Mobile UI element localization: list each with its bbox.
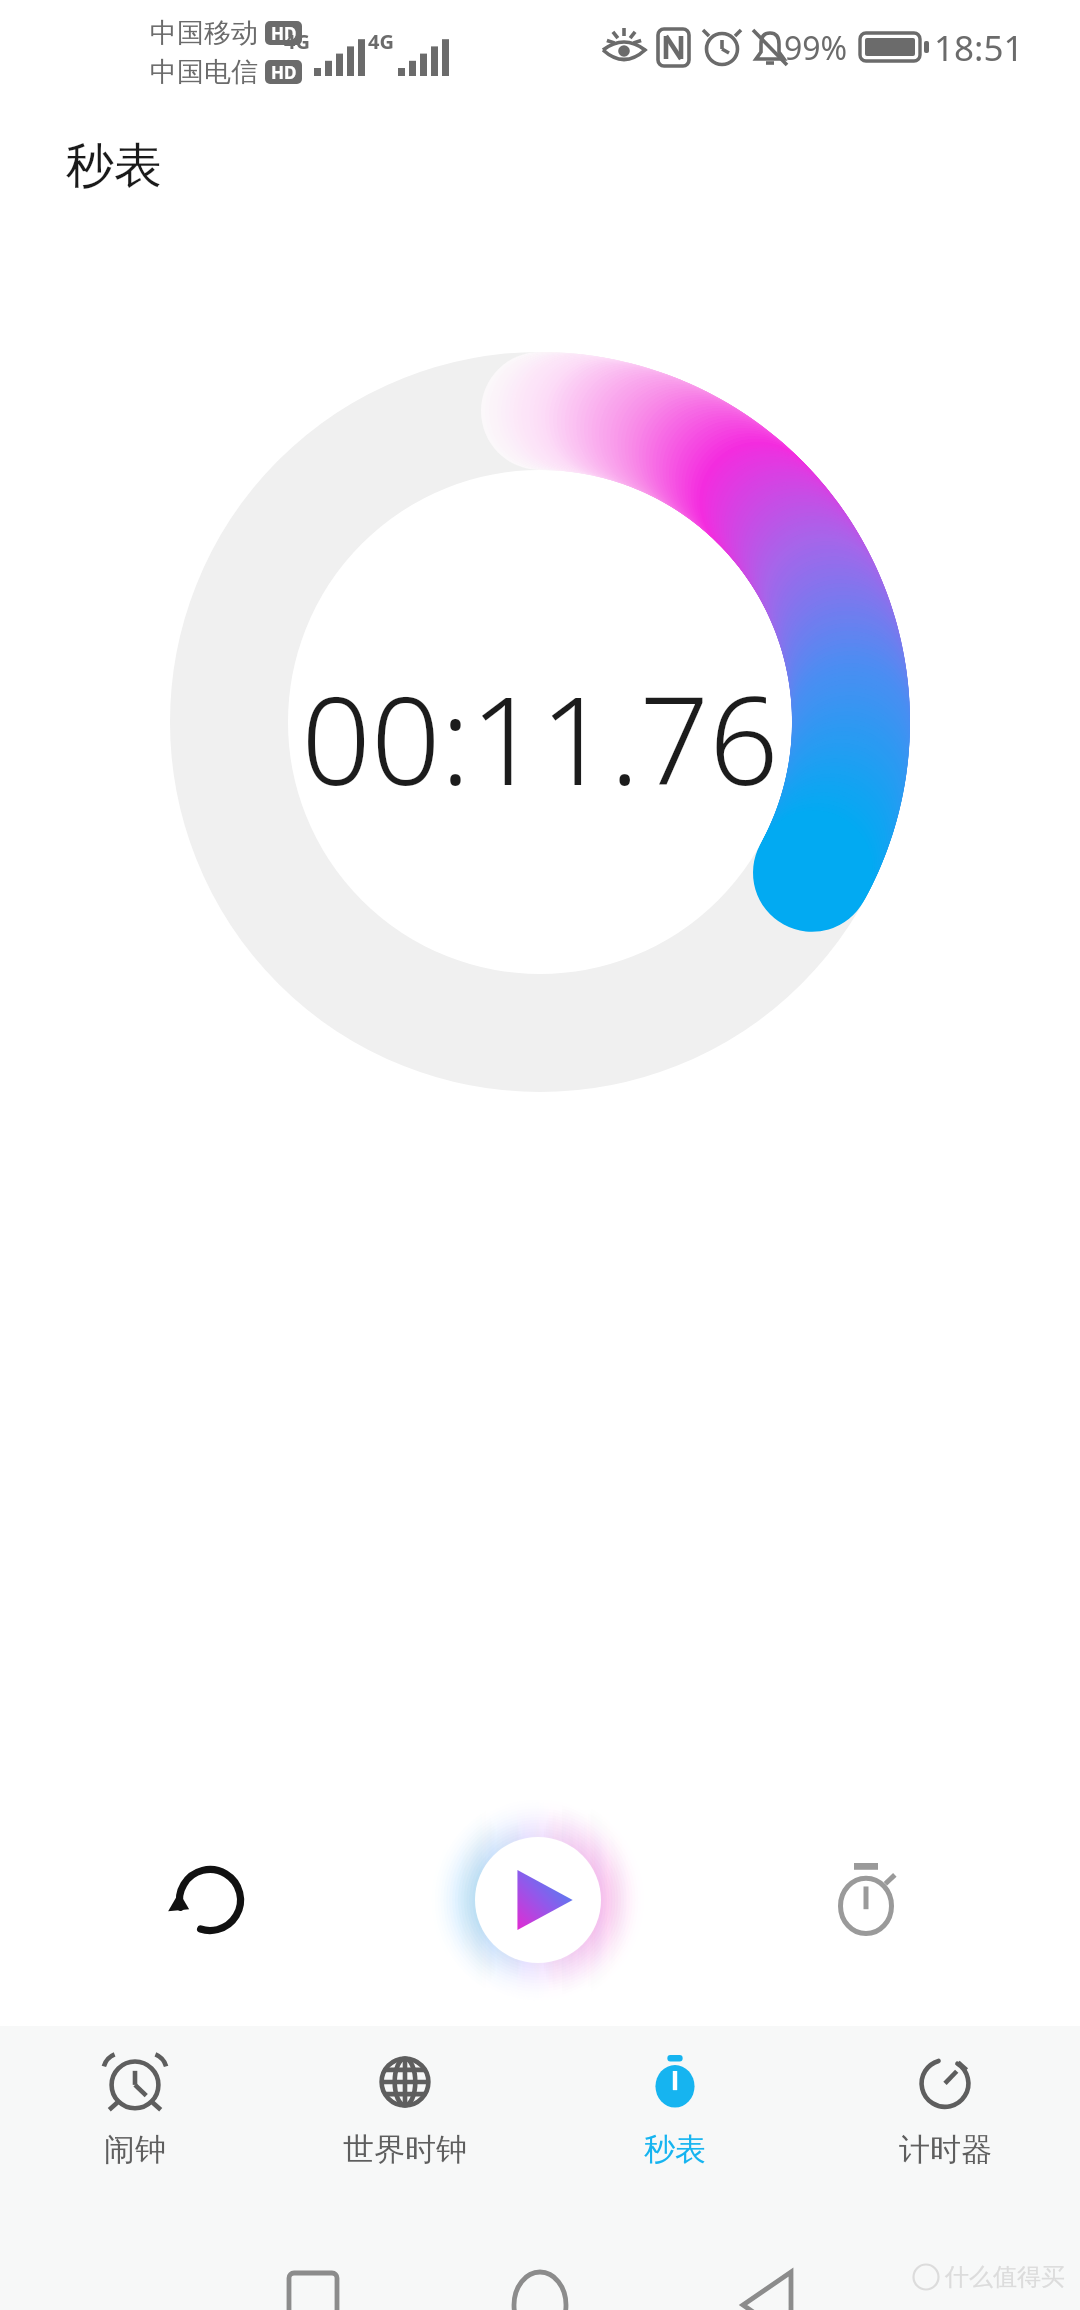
staticText: 闹钟 — [104, 2130, 166, 2169]
staticText: 中国电信 — [150, 55, 258, 89]
button[interactable]: 计时器 — [810, 2026, 1080, 2200]
staticText: 00:11.76 — [301, 655, 779, 821]
staticText: 秒表 — [66, 136, 162, 196]
staticText: 中国移动 — [150, 16, 258, 50]
staticText: 4G — [284, 28, 310, 55]
button[interactable]: Home — [480, 2245, 600, 2310]
staticText: 18:51 — [934, 24, 1024, 72]
staticText: 世界时钟 — [343, 2130, 467, 2169]
button[interactable]: 闹钟 — [0, 2026, 270, 2200]
staticText: 什么值得买 — [945, 2262, 1065, 2292]
button[interactable]: Recents — [253, 2245, 373, 2310]
staticText: 99% — [784, 26, 848, 70]
staticText: 计时器 — [899, 2130, 992, 2169]
staticText: 4G — [368, 28, 394, 55]
button[interactable]: Start — [438, 1800, 638, 2000]
button[interactable]: Reset — [150, 1840, 270, 1960]
button[interactable]: 秒表 — [540, 2026, 810, 2200]
staticText: 秒表 — [644, 2130, 706, 2169]
button[interactable]: Lap — [806, 1840, 926, 1960]
button[interactable]: 世界时钟 — [270, 2026, 540, 2200]
staticText: HD — [271, 22, 297, 45]
button[interactable]: Back — [707, 2245, 827, 2310]
staticText: HD — [271, 61, 297, 84]
